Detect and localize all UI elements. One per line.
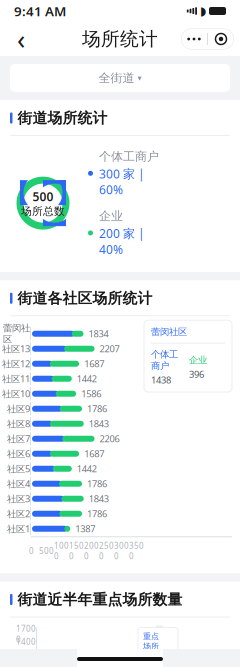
staticText: 0 [29,546,34,556]
staticText: 1000 [54,540,69,561]
button[interactable]: Back [6,24,36,54]
staticText: 企业 [189,354,207,366]
staticText: 1387 [75,523,95,535]
staticText: 社区10 [2,388,30,400]
staticText: 1687 [84,358,104,370]
staticText: 17000 [16,623,36,645]
staticText: 社区7 [7,433,30,445]
staticText: 3500 [129,540,144,561]
staticText: 2207 [100,343,120,355]
staticText: ‹ [17,21,25,57]
staticText: 社区6 [7,448,30,460]
staticText: ▾ [137,73,141,83]
staticText: 1843 [89,493,109,505]
staticText: 蕾闵社区 [151,326,187,338]
staticText: 1843 [89,418,109,430]
staticText: 1786 [87,478,107,490]
staticText: 社区1 [7,523,30,535]
staticText: 个体工商户 [99,149,159,164]
staticText: 1438 [151,374,171,386]
staticText: 2206 [99,433,119,445]
staticText: ◗ [200,4,206,18]
staticText: 社区11 [2,373,30,385]
staticText: 500 [32,189,53,204]
staticText: 200 家 | 40% [99,225,145,257]
staticText: 14000 [16,636,36,658]
staticText: 场所统计 [82,27,158,50]
staticText: 1786 [87,508,107,520]
staticText: 300 家 | 60% [99,166,145,198]
staticText: 全街道 [98,71,134,85]
staticText: 社区12 [2,358,30,370]
staticText: 场所总数 [21,204,65,218]
staticText: 街道各社区场所统计 [17,289,152,307]
staticText: 企业 [99,209,123,223]
staticText: 重点场所 [143,631,159,651]
button[interactable]: Close mini program [208,28,234,49]
staticText: 1442 [77,463,97,475]
staticText: 1586 [81,388,101,400]
staticText: 9:41 AM [14,2,66,20]
staticText: 社区9 [7,403,30,415]
staticText: 3000 [114,540,129,561]
button[interactable]: 全街道 [10,64,230,92]
staticText: 500 [39,546,54,556]
staticText: 1687 [84,448,104,460]
staticText: 1442 [77,373,97,385]
staticText: 社区13 [2,343,30,355]
staticText: 社区4 [7,478,30,490]
staticText: 社区3 [7,493,30,505]
staticText: 街道场所统计 [17,109,107,127]
staticText: 街道近半年重点场所数量 [17,590,182,608]
staticText: 社区2 [7,508,30,520]
staticText: 1786 [87,403,107,415]
staticText: 2500 [99,540,114,561]
staticText: 社区5 [7,463,30,475]
staticText: 1834 [88,328,108,340]
button[interactable]: More options [181,28,207,49]
staticText: 396 [189,368,204,380]
staticText: 社区8 [7,418,30,430]
staticText: 个体工商户 [151,349,178,372]
staticText: 蕾闵社区 [3,322,30,345]
staticText: 96家 [143,652,161,663]
staticText: 1500 [69,540,84,561]
staticText: 2000 [84,540,99,561]
